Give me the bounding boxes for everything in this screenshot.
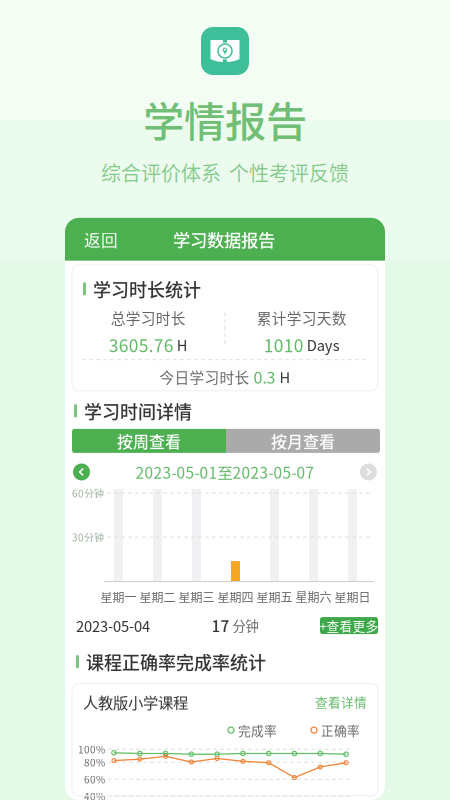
staticText: H (177, 334, 188, 355)
staticText: 星期日 (334, 588, 370, 605)
staticText: 课程正确率完成率统计 (86, 649, 266, 675)
staticText: 查看详情 (315, 693, 367, 711)
staticText: Days (307, 334, 340, 355)
staticText: 星期一 (100, 588, 136, 605)
staticText: 星期三 (178, 588, 214, 605)
staticText: 2023-05-01至2023-05-07 (135, 461, 314, 483)
staticText: 0.3 (253, 365, 275, 388)
staticText: 星期六 (295, 588, 331, 605)
staticText: 星期五 (256, 588, 292, 605)
staticText: 100% (78, 742, 105, 756)
staticText: 学情报告 (143, 89, 307, 149)
staticText: +查看更多 (319, 616, 378, 635)
staticText: 17 (211, 614, 229, 637)
button[interactable]: Previous week (72, 462, 91, 481)
staticText: 60分钟 (72, 486, 104, 500)
staticText: 学习数据报告 (173, 227, 275, 252)
staticText: 返回 (84, 227, 118, 251)
staticText: 今日学习时长 (159, 366, 249, 387)
staticText: 1010 (264, 332, 304, 357)
button[interactable]: Next week (359, 462, 378, 481)
staticText: 分钟 (229, 616, 258, 635)
staticText: 按月查看 (271, 429, 335, 452)
staticText: 完成率 (238, 721, 277, 739)
button[interactable]: 按月查看 (226, 429, 380, 453)
staticText: 星期二 (139, 588, 175, 605)
button[interactable]: 查看详情 (315, 693, 367, 711)
staticText: 2023-05-04 (76, 615, 150, 636)
staticText: 学习时长统计 (93, 276, 201, 302)
staticText: 学习时间详情 (84, 398, 192, 424)
button[interactable]: +查看更多 (320, 617, 378, 634)
staticText: 按周查看 (117, 429, 181, 452)
staticText: 3605.76 (109, 332, 174, 357)
staticText: 60% (84, 772, 105, 786)
staticText: 总学习时长 (111, 307, 186, 328)
staticText: 正确率 (321, 721, 360, 739)
staticText: 累计学习天数 (257, 307, 347, 328)
staticText: 综合评价体系 个性考评反馈 (101, 158, 349, 187)
button[interactable]: 按周查看 (72, 429, 226, 453)
button[interactable]: 返回 (65, 218, 137, 261)
staticText: 40% (84, 789, 105, 800)
staticText: H (279, 366, 290, 387)
staticText: 人教版小学课程 (83, 691, 188, 713)
staticText: 星期四 (217, 588, 253, 605)
staticText: 80% (84, 755, 105, 769)
staticText: 30分钟 (72, 530, 104, 544)
